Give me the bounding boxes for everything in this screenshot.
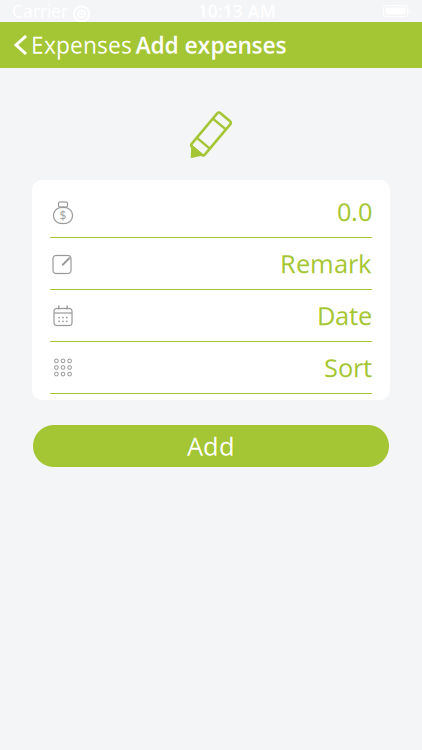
staticText: Carrier <box>12 0 68 22</box>
staticText: $ <box>59 207 66 223</box>
button[interactable]: Sort <box>32 342 390 394</box>
button[interactable]: Expenses <box>6 22 142 68</box>
button[interactable]: $ <box>32 186 390 238</box>
staticText: Expenses <box>31 30 132 60</box>
button[interactable]: Add <box>33 425 389 467</box>
button[interactable]: Date <box>32 290 390 342</box>
staticText: 0.0 <box>337 195 372 228</box>
button[interactable]: Remark <box>32 238 390 290</box>
staticText: Add expenses <box>135 30 286 60</box>
staticText: Remark <box>280 247 372 280</box>
staticText: Add <box>187 429 235 463</box>
staticText: Sort <box>324 351 372 384</box>
staticText: Date <box>317 299 372 332</box>
staticText: 10:13 AM <box>198 0 276 22</box>
